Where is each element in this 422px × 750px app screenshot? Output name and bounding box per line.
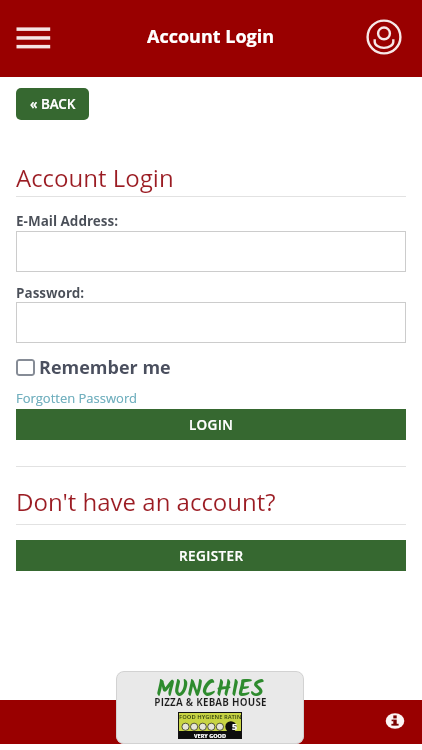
button[interactable]: Open navigation menu [6,14,60,62]
staticText: PIZZA & KEBAB HOUSE [154,696,267,709]
staticText: LOGIN [189,416,234,434]
button[interactable]: Remember me [16,355,171,380]
button[interactable]: « BACK [16,88,89,120]
staticText: Account Login [16,161,174,194]
staticText: Remember me [39,355,171,380]
staticText: REGISTER [179,547,244,565]
button[interactable]: LOGIN [16,409,406,440]
staticText: E-Mail Address: [16,212,119,230]
staticText: FOOD HYGIENE RATING [179,713,241,721]
staticText: 5 [232,720,238,732]
button[interactable]: REGISTER [16,540,406,571]
staticText: VERY GOOD [194,732,226,739]
button[interactable]: Forgotten Password [16,389,137,407]
staticText: « BACK [30,95,76,113]
button[interactable]: My account [358,11,410,63]
staticText: MUNCHIES [156,672,264,709]
staticText: Password: [16,284,85,302]
button[interactable]: Information [383,709,407,733]
staticText: Account Login [147,24,275,49]
button[interactable]: MUNCHIES [116,671,304,744]
staticText: Don't have an account? [16,485,276,518]
